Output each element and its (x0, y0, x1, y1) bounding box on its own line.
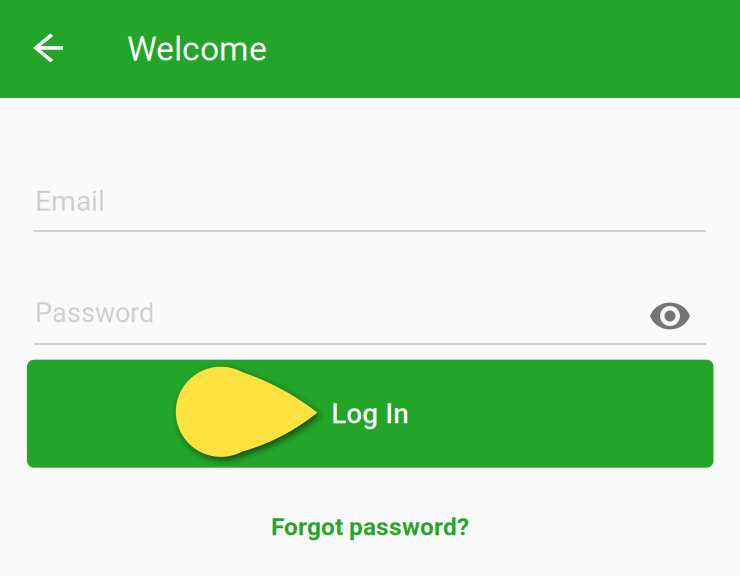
button[interactable]: Show password (642, 292, 698, 340)
staticText: Welcome (127, 29, 267, 69)
staticText: Email (35, 184, 105, 218)
button[interactable]: Log In (27, 360, 713, 468)
staticText: Password (35, 297, 154, 329)
staticText: Forgot password? (271, 513, 469, 541)
button[interactable]: Forgot password? (220, 505, 520, 549)
button[interactable]: Back (17, 0, 79, 97)
staticText: Log In (331, 397, 409, 430)
